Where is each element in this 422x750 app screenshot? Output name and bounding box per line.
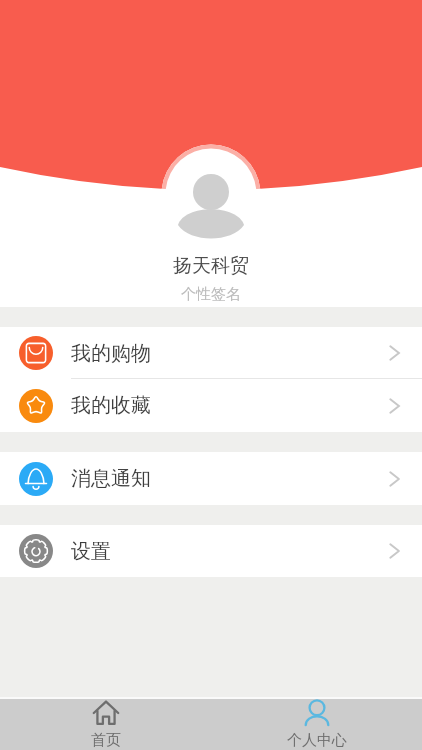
staticText: 设置 xyxy=(71,539,111,564)
staticText: 个性签名 xyxy=(181,285,241,304)
button[interactable]: 首页 xyxy=(0,699,211,750)
button[interactable]: 设置 xyxy=(0,525,422,577)
button[interactable]: 我的购物 xyxy=(0,327,422,379)
button[interactable]: 消息通知 xyxy=(0,452,422,505)
staticText: 首页 xyxy=(91,731,121,750)
staticText: 个人中心 xyxy=(287,731,347,750)
button[interactable]: 个人中心 xyxy=(211,699,422,750)
staticText: 我的购物 xyxy=(71,341,151,366)
staticText: 消息通知 xyxy=(71,466,151,491)
staticText: 我的收藏 xyxy=(71,393,151,418)
staticText: 扬天科贸 xyxy=(173,254,249,278)
button[interactable]: 我的收藏 xyxy=(0,379,422,432)
